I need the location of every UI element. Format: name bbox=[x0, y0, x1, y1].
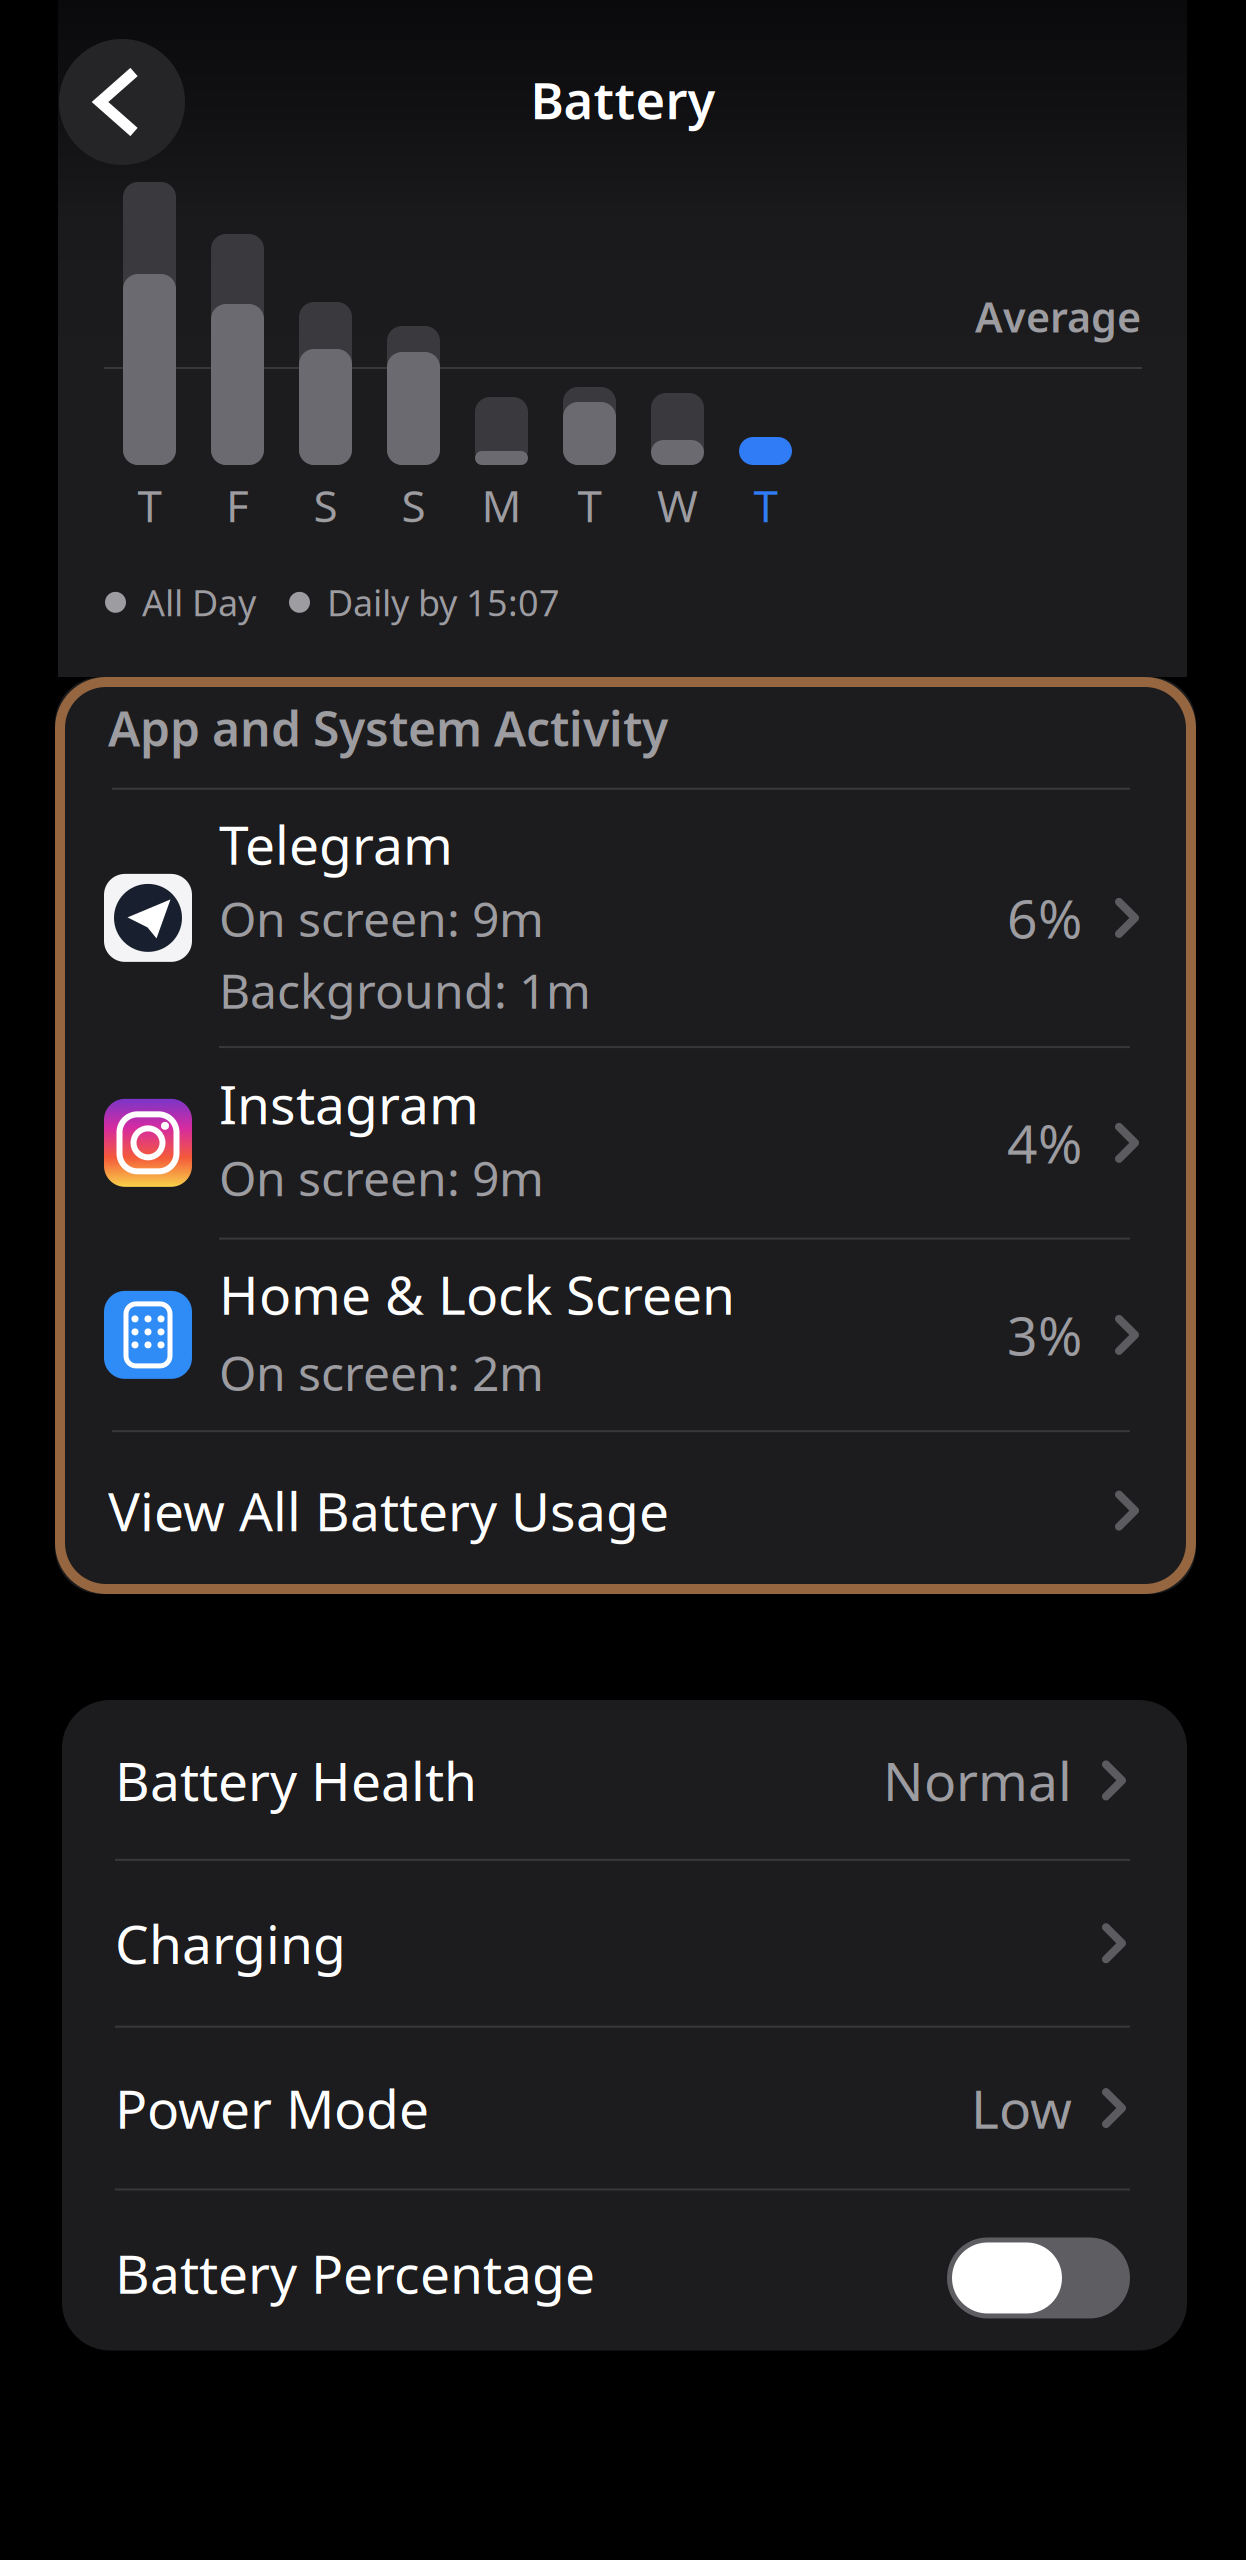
staticText: S bbox=[401, 476, 425, 534]
staticText: Battery bbox=[530, 66, 715, 133]
button[interactable]: Charging bbox=[62, 1861, 1187, 2026]
staticText: On screen: 9m bbox=[219, 887, 544, 950]
button[interactable]: View All Battery Usage bbox=[64, 1432, 1187, 1585]
staticText: Normal bbox=[883, 1745, 1072, 1816]
staticText: F bbox=[226, 476, 249, 534]
button[interactable]: Power Mode bbox=[62, 2028, 1187, 2188]
button[interactable]: Back bbox=[59, 39, 185, 165]
staticText: Battery Percentage bbox=[115, 2238, 595, 2308]
staticText: Low bbox=[971, 2073, 1072, 2143]
staticText: On screen: 9m bbox=[219, 1146, 544, 1210]
staticText: S bbox=[313, 476, 337, 534]
button[interactable]: Battery Health bbox=[62, 1700, 1187, 1859]
button[interactable]: Telegram bbox=[64, 790, 1187, 1046]
staticText: 6% bbox=[1007, 882, 1082, 953]
staticText: W bbox=[657, 476, 698, 534]
staticText: Charging bbox=[115, 1908, 346, 1979]
staticText: Telegram bbox=[219, 809, 453, 879]
staticText: 4% bbox=[1007, 1107, 1082, 1178]
staticText: Home & Lock Screen bbox=[219, 1259, 735, 1329]
staticText: On screen: 2m bbox=[219, 1340, 544, 1404]
staticText: T bbox=[577, 476, 601, 534]
button[interactable]: Instagram bbox=[64, 1048, 1187, 1238]
staticText: Battery Health bbox=[115, 1745, 477, 1816]
staticText: Daily by 15:07 bbox=[327, 578, 560, 626]
staticText: 3% bbox=[1007, 1299, 1082, 1370]
staticText: Background: 1m bbox=[219, 958, 591, 1022]
staticText: All Day bbox=[142, 578, 256, 626]
staticText: Instagram bbox=[219, 1068, 479, 1139]
staticText: Power Mode bbox=[115, 2073, 429, 2143]
staticText: T bbox=[137, 476, 161, 534]
button[interactable]: Battery Percentage bbox=[62, 2190, 1187, 2350]
staticText: View All Battery Usage bbox=[108, 1475, 669, 1546]
button[interactable]: Home & Lock Screen bbox=[64, 1240, 1187, 1430]
staticText: App and System Activity bbox=[108, 696, 668, 760]
staticText: Average bbox=[975, 289, 1141, 344]
staticText: T bbox=[753, 476, 777, 534]
staticText: M bbox=[481, 476, 521, 534]
